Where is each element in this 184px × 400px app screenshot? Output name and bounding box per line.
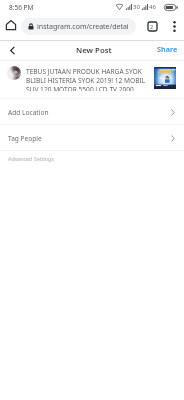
staticText: Share (157, 44, 178, 54)
staticText: New Post (76, 45, 112, 56)
button[interactable]: Back (3, 41, 21, 59)
staticText: Advanced Settings (8, 155, 54, 162)
staticText: Add Location (8, 108, 49, 117)
staticText: 30 (133, 3, 140, 11)
button[interactable]: Tabs (143, 17, 161, 35)
staticText: instagram.com/create/detai (37, 22, 129, 32)
staticText: TEBUS JUTAAN PRODUK HARGA SYOK BLIBLI HI… (26, 67, 147, 91)
staticText: 8:56 PM (9, 3, 34, 12)
button[interactable]: instagram.com/create/detai (21, 18, 136, 35)
button[interactable]: More options (165, 17, 183, 35)
button[interactable]: Share (154, 39, 180, 59)
staticText: 46 (149, 3, 156, 11)
button[interactable]: Add Location (0, 99, 184, 125)
staticText: 2 (150, 23, 154, 30)
button[interactable]: Home (2, 16, 20, 34)
button[interactable]: Tag People (0, 125, 184, 151)
staticText: Tag People (8, 134, 42, 143)
